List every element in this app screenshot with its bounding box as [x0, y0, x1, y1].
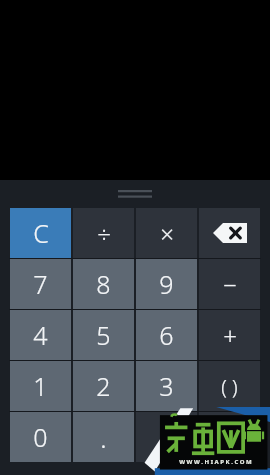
staticText: 7	[33, 267, 48, 301]
staticText: −	[223, 268, 237, 301]
button[interactable]: ( )	[199, 361, 260, 411]
staticText: 2	[96, 369, 111, 403]
button[interactable]: 8	[73, 259, 134, 309]
button[interactable]: 1	[10, 361, 71, 411]
button[interactable]: C	[10, 208, 71, 258]
staticText: 1	[33, 369, 48, 403]
button[interactable]: ×	[136, 208, 197, 258]
staticText: +	[223, 319, 237, 352]
button[interactable]: 2	[73, 361, 134, 411]
staticText: 5	[96, 318, 111, 352]
staticText: ( )	[221, 373, 238, 400]
button[interactable]: 7	[10, 259, 71, 309]
button[interactable]: 5	[73, 310, 134, 360]
staticText: C	[33, 216, 49, 250]
button[interactable]	[136, 412, 197, 462]
button[interactable]: 4	[10, 310, 71, 360]
button[interactable]: 6	[136, 310, 197, 360]
staticText: 3	[159, 369, 174, 403]
button[interactable]	[199, 412, 260, 462]
staticText: 9	[159, 267, 174, 301]
staticText: ÷	[97, 217, 111, 250]
staticText: 8	[96, 267, 111, 301]
button[interactable]: −	[199, 259, 260, 309]
staticText: 6	[159, 318, 174, 352]
button[interactable]: ÷	[73, 208, 134, 258]
staticText: ×	[160, 217, 174, 250]
button[interactable]: .	[73, 412, 134, 462]
button[interactable]: 9	[136, 259, 197, 309]
button[interactable]: Backspace	[199, 208, 260, 258]
button[interactable]: Drag handle	[118, 188, 152, 200]
button[interactable]: +	[199, 310, 260, 360]
staticText: 0	[33, 420, 48, 454]
staticText: .	[100, 420, 107, 455]
button[interactable]: 3	[136, 361, 197, 411]
staticText: 4	[33, 318, 48, 352]
staticText: W W W . H I A P K . C O M	[179, 458, 252, 466]
button[interactable]: 0	[10, 412, 71, 462]
